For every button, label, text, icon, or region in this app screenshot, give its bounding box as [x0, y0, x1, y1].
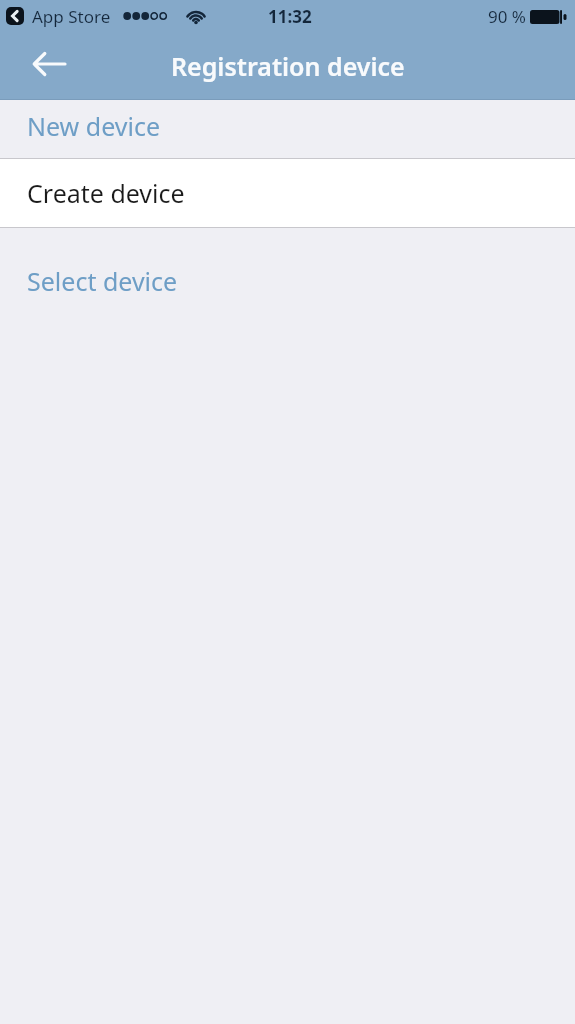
- staticText: 90 %: [488, 5, 526, 28]
- button[interactable]: Create device: [0, 159, 575, 227]
- staticText: App Store: [32, 5, 111, 28]
- button[interactable]: Select device: [27, 264, 178, 298]
- staticText: New device: [27, 109, 160, 143]
- staticText: Registration device: [171, 49, 405, 83]
- button[interactable]: [27, 44, 71, 88]
- staticText: 11:32: [268, 5, 312, 28]
- staticText: Create device: [27, 176, 185, 210]
